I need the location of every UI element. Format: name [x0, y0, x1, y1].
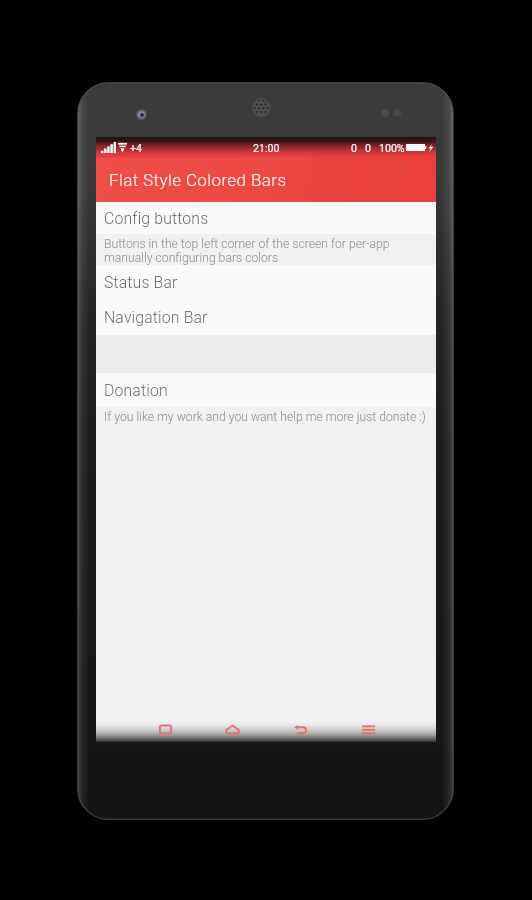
- staticText: 100%: [379, 142, 405, 154]
- button[interactable]: Recents: [152, 716, 178, 742]
- button[interactable]: Back: [287, 716, 313, 742]
- button[interactable]: Donation: [96, 373, 436, 407]
- staticText: 0: [365, 142, 371, 154]
- button[interactable]: Menu: [355, 716, 381, 742]
- staticText: 21:00: [253, 142, 280, 154]
- staticText: Config buttons: [104, 209, 209, 228]
- staticText: Buttons in the top left corner of the sc…: [104, 237, 390, 265]
- staticText: 0: [351, 142, 357, 154]
- staticText: If you like my work and you want help me…: [104, 410, 426, 424]
- staticText: Navigation Bar: [104, 308, 208, 327]
- button[interactable]: Config buttons: [96, 202, 436, 234]
- button[interactable]: Navigation Bar: [96, 300, 436, 335]
- button[interactable]: Home: [219, 716, 245, 742]
- staticText: +4: [130, 142, 142, 154]
- staticText: Flat Style Colored Bars: [109, 170, 287, 190]
- staticText: Status Bar: [104, 273, 178, 292]
- button[interactable]: Status Bar: [96, 265, 436, 300]
- staticText: Donation: [104, 381, 168, 400]
